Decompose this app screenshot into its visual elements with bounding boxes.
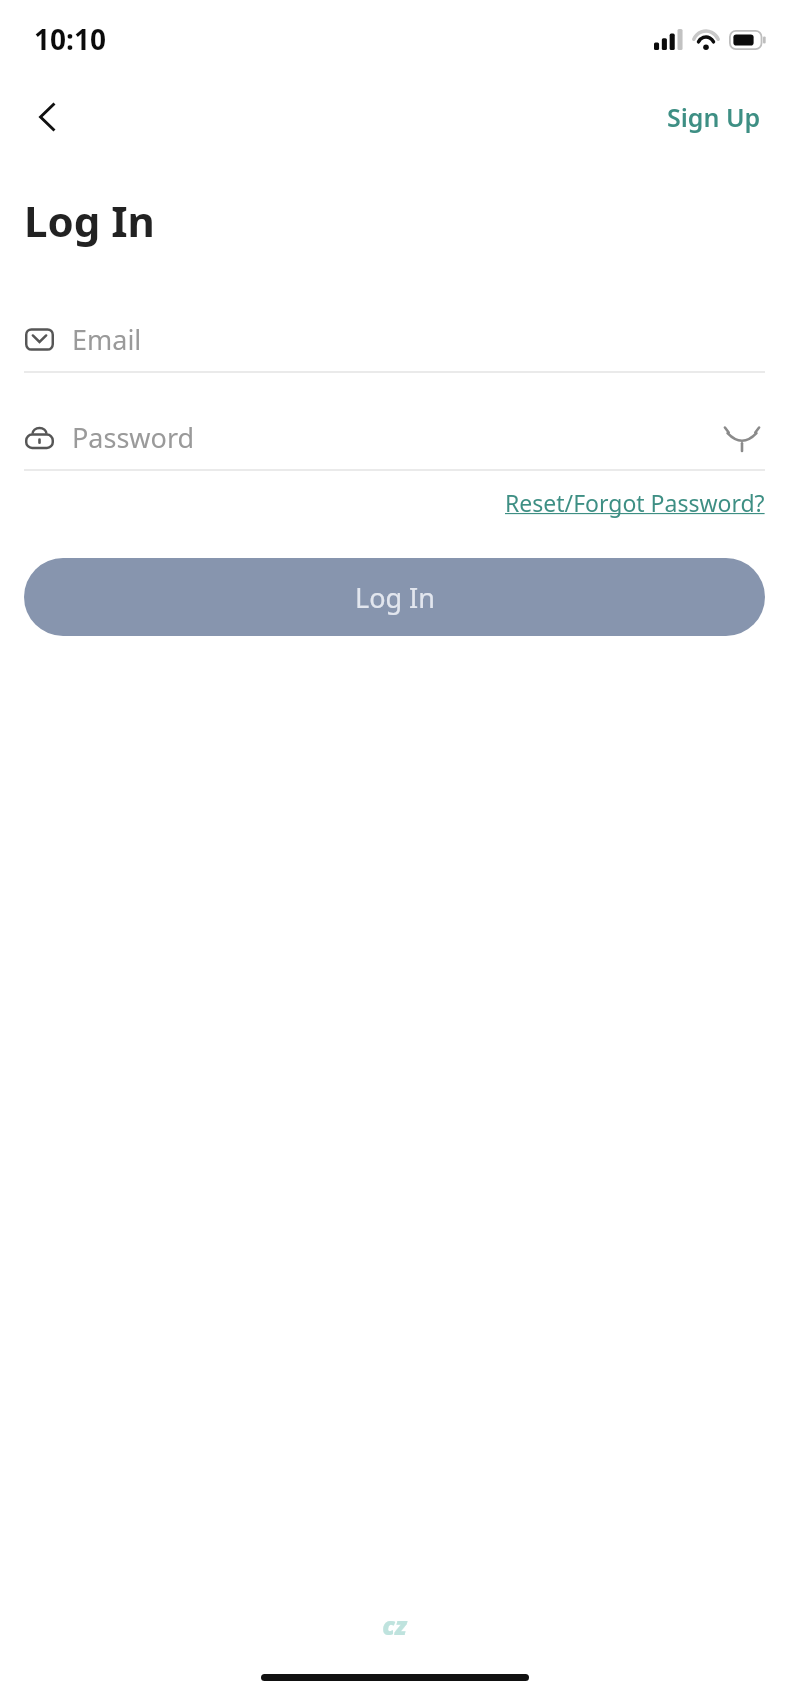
button[interactable]: Password xyxy=(24,405,765,469)
staticText: Log In xyxy=(24,192,155,249)
staticText: cz xyxy=(382,1608,407,1642)
button[interactable]: Reset/Forgot Password? xyxy=(505,481,765,524)
staticText: Email xyxy=(72,321,765,358)
button[interactable]: Sign Up xyxy=(661,92,767,142)
staticText: Sign Up xyxy=(667,100,761,134)
staticText: 10:10 xyxy=(34,20,106,58)
button[interactable]: Email xyxy=(24,307,765,371)
staticText: Reset/Forgot Password? xyxy=(505,487,765,518)
button[interactable]: Back xyxy=(20,89,76,145)
button[interactable]: Log In xyxy=(24,558,765,636)
button[interactable]: Show password xyxy=(719,414,765,460)
staticText: Password xyxy=(72,419,719,456)
staticText: Log In xyxy=(355,579,435,616)
